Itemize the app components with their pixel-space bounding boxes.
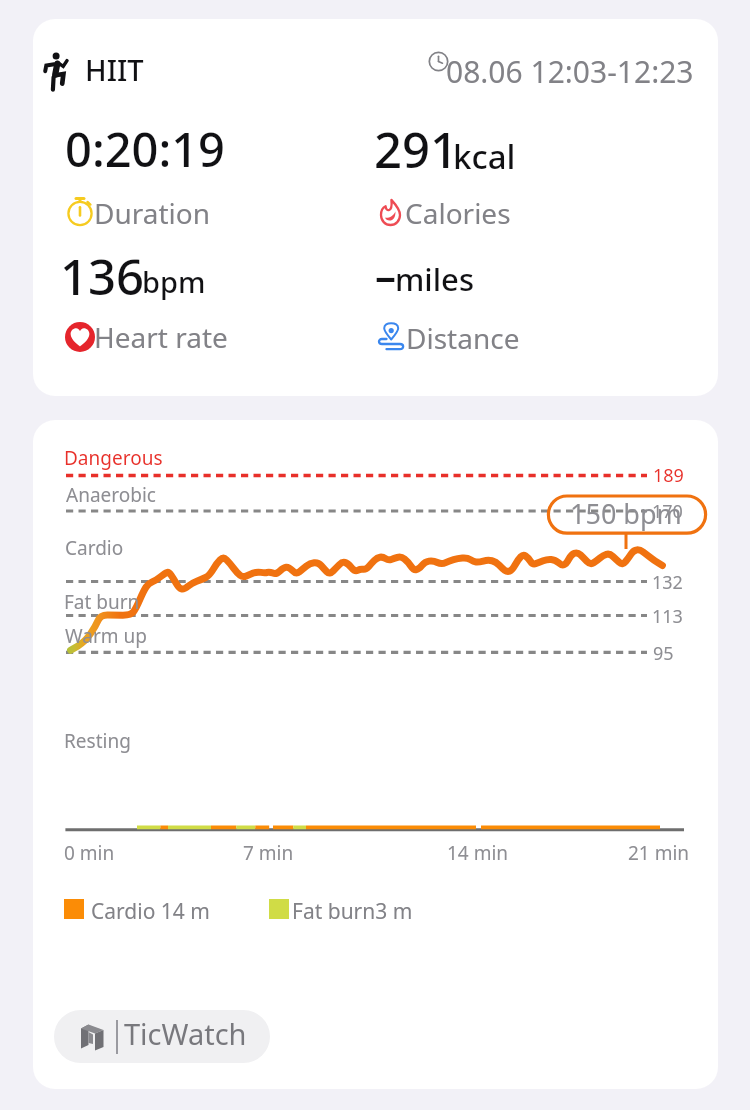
staticText: 0:20:19 [65, 117, 225, 181]
staticText: Dangerous [64, 445, 163, 471]
staticText: HIIT [85, 50, 144, 89]
staticText: Resting [64, 728, 131, 754]
staticText: 113 [652, 604, 683, 629]
staticText: 189 [653, 463, 684, 488]
button[interactable]: TicWatch device [54, 1010, 270, 1063]
staticText: Fat burn [64, 589, 140, 615]
staticText: 170 [652, 499, 683, 524]
staticText: 7 min [243, 840, 294, 866]
staticText: 21 min [628, 840, 690, 866]
staticText: Anaerobic [66, 482, 156, 508]
staticText: 08.06 12:03-12:23 [446, 51, 694, 92]
staticText: kcal [453, 134, 516, 179]
other: Running workout [44, 52, 68, 92]
button[interactable]: Running workout [33, 19, 718, 396]
button[interactable]: Dangerous [33, 420, 718, 1089]
staticText: Warm up [65, 623, 147, 649]
staticText: 0 min [64, 840, 115, 866]
staticText: Duration [94, 194, 211, 232]
staticText: 150 bpm [570, 495, 682, 532]
staticText: 132 [652, 570, 683, 595]
staticText: 14 min [447, 840, 509, 866]
staticText: Calories [405, 194, 511, 232]
staticText: Fat burn3 m [292, 897, 413, 926]
staticText: bpm [142, 262, 206, 301]
staticText: Distance [406, 319, 520, 357]
staticText: 136 [60, 243, 145, 310]
staticText: miles [395, 258, 474, 300]
staticText: – [375, 246, 397, 303]
staticText: Cardio 14 m [91, 897, 210, 926]
staticText: Heart rate [94, 318, 228, 356]
staticText: Cardio [65, 535, 124, 561]
staticText: 291 [374, 116, 459, 183]
staticText: 95 [653, 641, 674, 666]
staticText: TicWatch [124, 1014, 247, 1053]
